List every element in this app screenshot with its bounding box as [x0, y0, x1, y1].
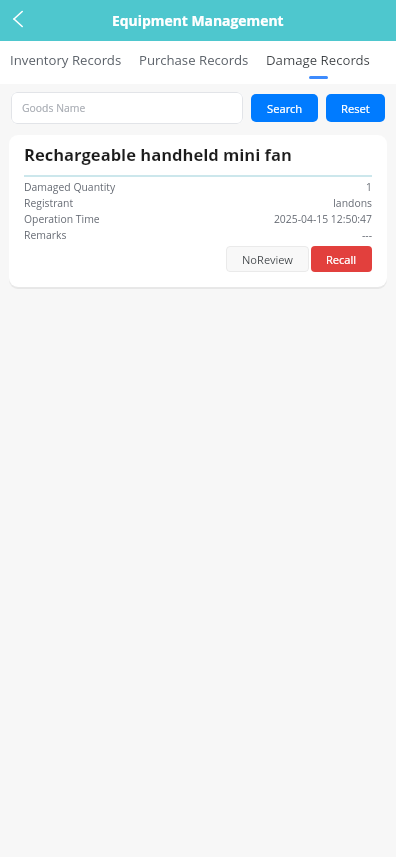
staticText: Rechargeable handheld mini fan	[24, 143, 292, 166]
staticText: Remarks	[24, 228, 67, 242]
staticText: Goods Name	[22, 101, 86, 115]
staticText: Damage Records	[266, 51, 370, 69]
staticText: 1	[124, 180, 372, 194]
staticText: landons	[82, 196, 372, 210]
button[interactable]: Recall	[311, 246, 372, 272]
staticText: Search	[267, 101, 303, 116]
button[interactable]: Damage Records	[266, 51, 370, 79]
staticText: Operation Time	[24, 212, 100, 226]
staticText: 2025-04-15 12:50:47	[108, 212, 372, 226]
button[interactable]: NoReview	[226, 246, 309, 272]
staticText: Registrant	[24, 196, 74, 210]
button[interactable]: Back	[2, 1, 38, 37]
staticText: Equipment Management	[112, 11, 284, 30]
staticText: Purchase Records	[139, 51, 249, 69]
staticText: ---	[75, 228, 372, 242]
staticText: Inventory Records	[10, 51, 122, 69]
staticText: NoReview	[242, 252, 293, 267]
staticText: Reset	[341, 101, 370, 116]
staticText: Damaged Quantity	[24, 180, 116, 194]
button[interactable]: Goods Name	[11, 92, 243, 124]
button[interactable]: Reset	[326, 94, 385, 122]
staticText: Recall	[326, 252, 357, 267]
button[interactable]: Inventory Records	[10, 51, 122, 79]
button[interactable]: Search	[251, 94, 318, 122]
button[interactable]: Purchase Records	[139, 51, 249, 79]
